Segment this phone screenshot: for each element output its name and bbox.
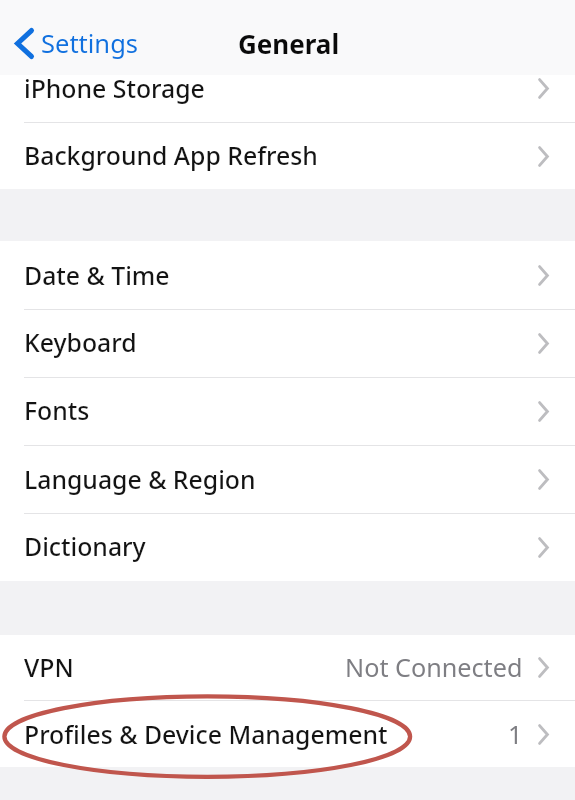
staticText: Language & Region [24, 462, 256, 496]
button[interactable]: Keyboard [0, 310, 575, 377]
button[interactable]: Date & Time [0, 241, 575, 309]
staticText: Keyboard [24, 325, 137, 359]
staticText: 1 [508, 717, 523, 751]
button[interactable]: Background App Refresh [0, 123, 575, 189]
button[interactable]: VPN [0, 635, 575, 700]
button[interactable]: Back to Settings [8, 18, 106, 53]
staticText: iPhone Storage [24, 71, 205, 105]
button[interactable]: Profiles & Device Management [0, 701, 575, 767]
staticText: Background App Refresh [24, 138, 318, 172]
button[interactable]: Language & Region [0, 446, 575, 513]
staticText: Dictionary [24, 529, 146, 563]
staticText: Settings [41, 26, 139, 61]
staticText: Profiles & Device Management [24, 717, 388, 751]
staticText: Date & Time [24, 258, 170, 292]
button[interactable]: Fonts [0, 378, 575, 445]
button[interactable]: iPhone Storage [0, 75, 575, 122]
button[interactable]: Dictionary [0, 514, 575, 581]
staticText: Not Connected [345, 650, 523, 684]
staticText: General [238, 26, 340, 61]
staticText: VPN [24, 650, 74, 684]
staticText: Fonts [24, 393, 90, 427]
